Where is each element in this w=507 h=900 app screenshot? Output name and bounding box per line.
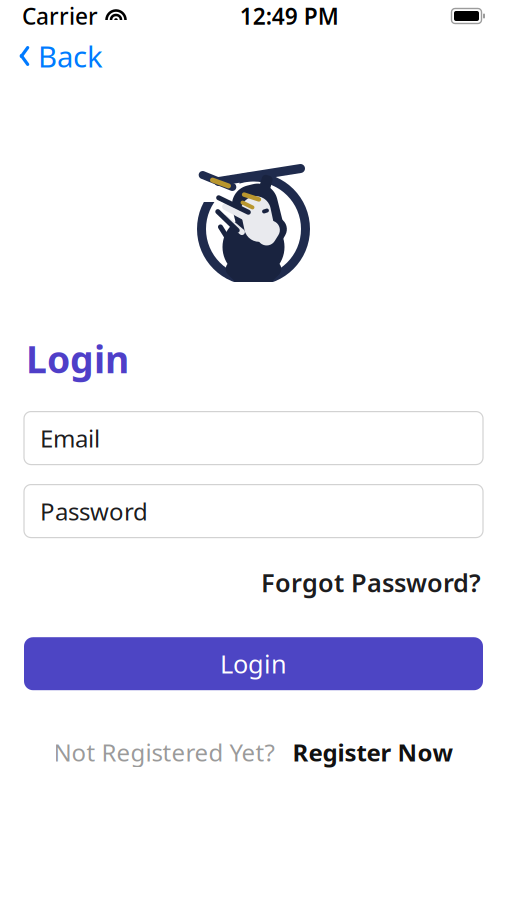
staticText: Login	[220, 647, 287, 680]
staticText: Password	[40, 495, 148, 527]
staticText: Forgot Password?	[261, 566, 481, 599]
button[interactable]: Forgot Password?	[261, 562, 481, 603]
staticText: Login	[26, 334, 129, 384]
staticText: Not Registered Yet?	[53, 736, 274, 768]
button[interactable]: Back	[4, 28, 117, 83]
staticText: Email	[40, 422, 100, 454]
button[interactable]: Register Now	[292, 732, 453, 772]
button[interactable]: Login	[0, 637, 507, 690]
button[interactable]: Email	[0, 412, 507, 465]
staticText: Back	[38, 36, 103, 75]
staticText: Carrier	[22, 1, 98, 31]
button[interactable]: Password	[0, 485, 507, 538]
staticText: 12:49 PM	[240, 1, 339, 31]
staticText: Register Now	[292, 736, 453, 768]
